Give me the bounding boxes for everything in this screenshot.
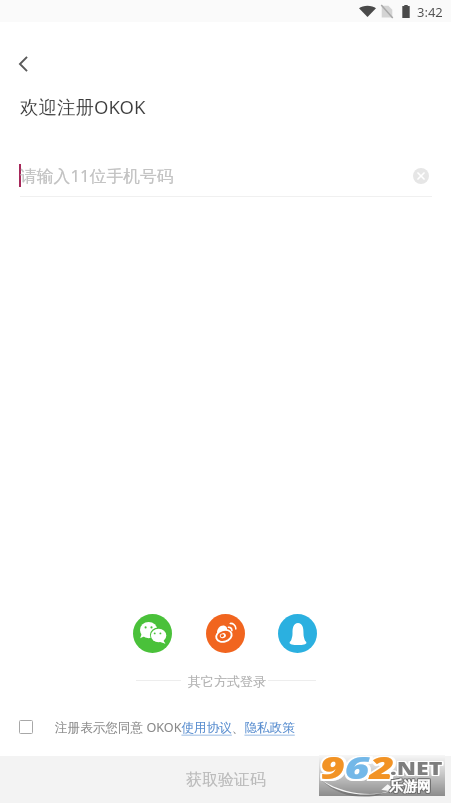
staticText: 962 — [323, 746, 398, 787]
staticText: 962 — [320, 749, 395, 790]
staticText: .NET — [391, 758, 444, 781]
staticText: .NET — [389, 756, 442, 779]
staticText: 962 — [319, 747, 394, 788]
button[interactable]: 获取验证码 — [0, 756, 451, 803]
button[interactable]: Back — [7, 48, 39, 80]
staticText: 962 — [319, 749, 394, 790]
button[interactable]: QQ login — [278, 614, 317, 653]
staticText: 乐游网 — [390, 779, 432, 797]
staticText: 962 — [323, 747, 398, 788]
staticText: 乐游网 — [390, 778, 432, 796]
button[interactable]: Weibo login — [206, 614, 245, 653]
staticText: 乐游网 — [388, 778, 430, 796]
button[interactable]: Agree to terms checkbox — [13, 715, 39, 739]
staticText: .NET — [390, 758, 443, 781]
staticText: 962 — [320, 746, 395, 787]
staticText: .NET — [391, 757, 444, 780]
staticText: 乐游网 — [389, 777, 431, 795]
staticText: 其它方式登录 — [188, 673, 266, 689]
staticText: .NET — [389, 758, 442, 781]
button[interactable]: Clear text — [409, 164, 433, 188]
staticText: .NET — [390, 756, 443, 779]
staticText: .NET — [391, 756, 444, 779]
staticText: 962 — [319, 746, 394, 787]
staticText: 962 — [323, 749, 398, 790]
staticText: .NET — [389, 757, 442, 780]
staticText: 乐游网 — [389, 778, 431, 796]
staticText: 3:42 — [417, 3, 443, 21]
staticText: 乐游网 — [388, 779, 430, 797]
staticText: 欢迎注册OKOK — [20, 94, 146, 119]
staticText: 请输入11位手机号码 — [20, 164, 174, 187]
staticText: 乐游网 — [390, 777, 432, 795]
staticText: 962 — [320, 747, 395, 788]
staticText: 乐游网 — [389, 779, 431, 797]
staticText: 注册表示您同意 OKOK使用协议、隐私政策 — [55, 719, 295, 736]
staticText: .NET — [390, 757, 443, 780]
staticText: 乐游网 — [388, 777, 430, 795]
staticText: 获取验证码 — [186, 770, 266, 790]
button[interactable]: WeChat login — [133, 614, 172, 653]
